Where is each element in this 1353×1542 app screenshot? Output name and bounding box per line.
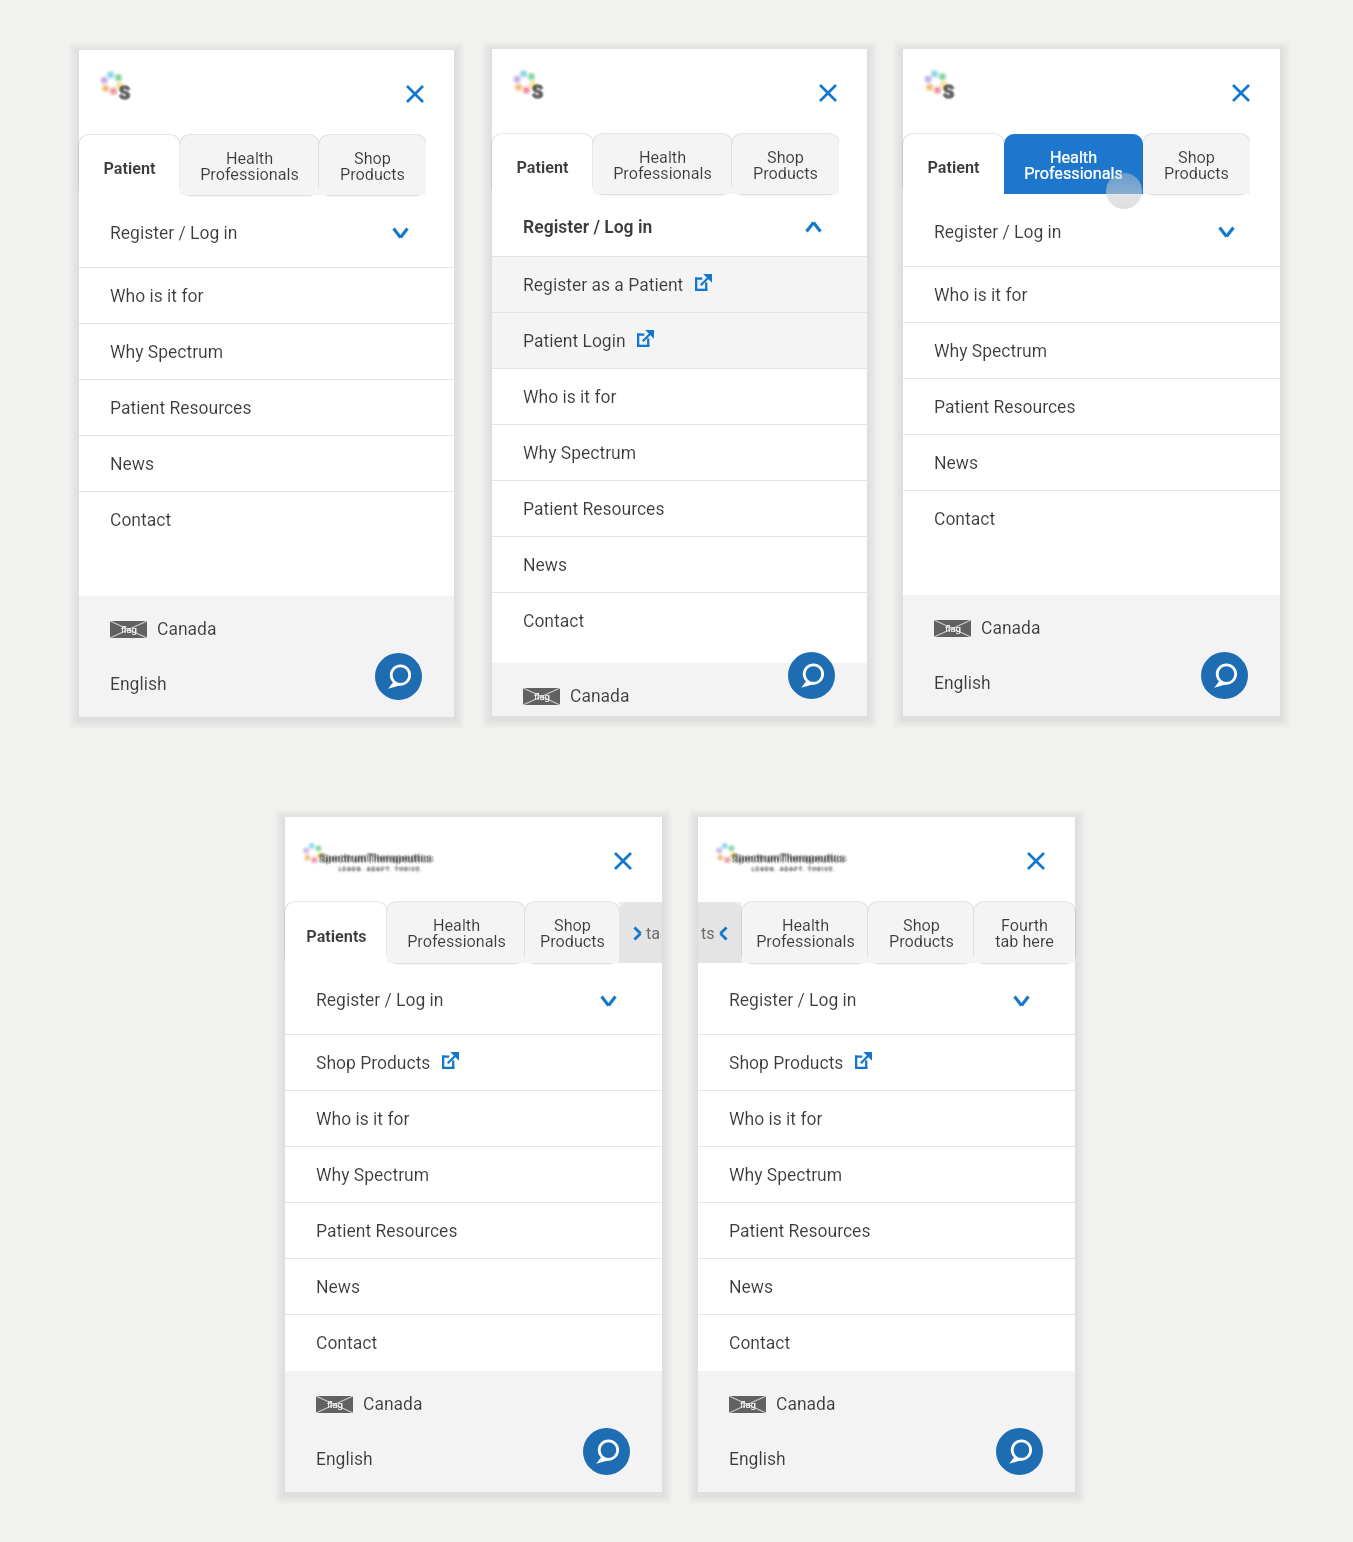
staticText: Why Spectrum xyxy=(523,443,637,464)
staticText: S xyxy=(532,81,544,101)
button[interactable]: Patient Resources xyxy=(698,1203,1075,1259)
button[interactable]: Register / Log in xyxy=(698,966,1075,1035)
button[interactable]: Why Spectrum xyxy=(285,1147,662,1203)
button[interactable]: Fourth tab here xyxy=(974,902,1075,963)
staticText: SpectrumTherapeutics xyxy=(319,853,433,866)
button[interactable]: Contact xyxy=(492,593,867,649)
button[interactable]: Why Spectrum xyxy=(79,324,454,380)
button[interactable]: Why Spectrum xyxy=(492,425,867,481)
button[interactable]: Shop Products xyxy=(1143,134,1250,194)
staticText: Contact xyxy=(523,611,585,632)
button[interactable]: Shop Products xyxy=(319,135,426,195)
staticText: S xyxy=(942,81,954,101)
staticText: S xyxy=(943,82,955,102)
staticText: S xyxy=(532,83,544,103)
button[interactable]: More tabs xyxy=(619,902,662,963)
staticText: LEARN. ADAPT. THRIVE. xyxy=(338,866,423,872)
button[interactable]: Shop Products xyxy=(525,902,619,963)
button[interactable]: Patient Login xyxy=(492,313,867,369)
staticText: S xyxy=(943,81,955,101)
staticText: Shop Products xyxy=(753,148,818,183)
button[interactable]: Close menu xyxy=(1019,844,1053,878)
button[interactable]: Open chat xyxy=(1201,652,1248,699)
button[interactable]: Close menu xyxy=(811,76,845,110)
button[interactable]: Close menu xyxy=(606,844,640,878)
staticText: S xyxy=(120,82,132,102)
button[interactable]: Previous tabs xyxy=(698,902,742,963)
button[interactable]: Patient Resources xyxy=(285,1203,662,1259)
staticText: LEARN. ADAPT. THRIVE. xyxy=(752,866,837,872)
staticText: Patient Login xyxy=(523,331,626,352)
button[interactable]: Health Professionals xyxy=(1004,134,1143,194)
button[interactable]: News xyxy=(492,537,867,593)
staticText: SpectrumTherapeutics xyxy=(731,853,845,866)
button[interactable]: Who is it for xyxy=(903,267,1280,323)
staticText: News xyxy=(523,555,567,576)
button[interactable]: Health Professionals xyxy=(593,134,732,194)
button[interactable]: Who is it for xyxy=(79,268,454,324)
staticText: SpectrumTherapeutics xyxy=(319,852,433,865)
button[interactable]: Register / Log in xyxy=(903,197,1280,267)
staticText: S xyxy=(533,82,545,102)
staticText: S xyxy=(532,79,544,99)
button[interactable]: Shop Products xyxy=(732,134,839,194)
button[interactable]: Register / Log in xyxy=(492,197,867,257)
button[interactable]: Register / Log in xyxy=(79,198,454,268)
staticText: S xyxy=(533,81,545,101)
button[interactable]: Contact xyxy=(698,1315,1075,1371)
button[interactable]: Who is it for xyxy=(285,1091,662,1147)
staticText: LEARN. ADAPT. THRIVE. xyxy=(338,867,423,873)
button[interactable]: Why Spectrum xyxy=(698,1147,1075,1203)
staticText: Who is it for xyxy=(523,387,617,408)
button[interactable]: Shop Products xyxy=(698,1035,1075,1091)
staticText: S xyxy=(119,81,131,101)
staticText: SpectrumTherapeutics xyxy=(322,852,436,865)
button[interactable]: Open chat xyxy=(996,1428,1043,1475)
staticText: Patients xyxy=(306,927,367,946)
staticText: ts xyxy=(701,924,715,943)
button[interactable]: Open chat xyxy=(375,653,422,700)
staticText: S xyxy=(533,80,545,100)
button[interactable]: News xyxy=(903,435,1280,491)
button[interactable]: Shop Products xyxy=(868,902,974,963)
button[interactable]: Patient xyxy=(492,134,593,197)
button[interactable]: Patient Resources xyxy=(79,380,454,436)
button[interactable]: Open chat xyxy=(788,652,835,699)
button[interactable]: News xyxy=(285,1259,662,1315)
staticText: SpectrumTherapeutics xyxy=(734,852,848,865)
staticText: LEARN. ADAPT. THRIVE. xyxy=(752,867,837,873)
button[interactable]: Open chat xyxy=(583,1428,630,1475)
button[interactable]: Health Professionals xyxy=(180,135,319,195)
button[interactable]: Who is it for xyxy=(698,1091,1075,1147)
button[interactable]: Register as a Patient xyxy=(492,257,867,313)
button[interactable]: Why Spectrum xyxy=(903,323,1280,379)
staticText: SpectrumTherapeutics xyxy=(732,854,846,867)
staticText: LEARN. ADAPT. THRIVE. xyxy=(751,865,836,871)
button[interactable]: Contact xyxy=(79,492,454,548)
button[interactable]: Health Professionals xyxy=(742,902,868,963)
button[interactable]: News xyxy=(79,436,454,492)
button[interactable]: Close menu xyxy=(398,77,432,111)
staticText: SpectrumTherapeutics xyxy=(732,850,846,863)
staticText: SpectrumTherapeutics xyxy=(732,852,846,865)
staticText: SpectrumTherapeutics xyxy=(319,854,433,867)
button[interactable]: Patient Resources xyxy=(492,481,867,537)
button[interactable]: Contact xyxy=(903,491,1280,547)
staticText: Patient Resources xyxy=(934,397,1076,418)
button[interactable]: Contact xyxy=(285,1315,662,1371)
staticText: LEARN. ADAPT. THRIVE. xyxy=(752,864,837,870)
button[interactable]: Who is it for xyxy=(492,369,867,425)
staticText: Who is it for xyxy=(729,1109,823,1130)
button[interactable]: Patient xyxy=(903,134,1004,197)
button[interactable]: Patient xyxy=(79,135,180,198)
staticText: S xyxy=(943,80,955,100)
staticText: flag xyxy=(945,623,961,634)
button[interactable]: Close menu xyxy=(1224,76,1258,110)
staticText: Contact xyxy=(934,509,996,530)
button[interactable]: News xyxy=(698,1259,1075,1315)
button[interactable]: Health Professionals xyxy=(387,902,525,963)
button[interactable]: Patient Resources xyxy=(903,379,1280,435)
button[interactable]: Shop Products xyxy=(285,1035,662,1091)
button[interactable]: Register / Log in xyxy=(285,966,662,1035)
button[interactable]: Patients xyxy=(285,902,387,966)
